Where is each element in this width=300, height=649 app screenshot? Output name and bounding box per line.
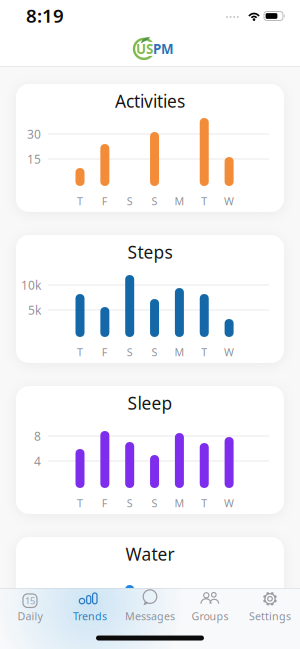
staticText: Settings: [249, 609, 291, 623]
button[interactable]: Groups: [182, 588, 238, 628]
staticText: Water: [125, 542, 174, 565]
staticText: Messages: [125, 609, 175, 623]
staticText: M: [174, 345, 184, 359]
staticText: T: [77, 194, 83, 208]
staticText: Steps: [127, 240, 172, 263]
staticText: F: [102, 345, 108, 359]
button[interactable]: 15: [2, 588, 58, 628]
staticText: W: [224, 345, 234, 359]
staticText: 15: [25, 594, 35, 607]
staticText: S: [127, 345, 133, 359]
staticText: S: [152, 345, 158, 359]
staticText: 15: [27, 151, 41, 167]
staticText: T: [201, 496, 207, 510]
staticText: PM: [153, 40, 174, 58]
staticText: S: [127, 194, 133, 208]
staticText: T: [201, 345, 207, 359]
staticText: W: [224, 194, 234, 208]
staticText: Trends: [73, 609, 107, 623]
staticText: Activities: [115, 89, 185, 112]
staticText: T: [201, 194, 207, 208]
staticText: 8:19: [26, 3, 64, 28]
staticText: F: [102, 496, 108, 510]
staticText: W: [224, 496, 234, 510]
staticText: Sleep: [127, 391, 172, 414]
staticText: F: [102, 194, 108, 208]
staticText: 8: [34, 428, 41, 444]
staticText: 30: [27, 126, 41, 142]
staticText: Daily: [17, 609, 42, 623]
button[interactable]: Settings: [242, 588, 298, 628]
staticText: Groups: [191, 609, 228, 623]
staticText: T: [77, 345, 83, 359]
staticText: US: [136, 40, 153, 58]
staticText: 4: [34, 453, 41, 469]
staticText: S: [152, 496, 158, 510]
staticText: S: [152, 194, 158, 208]
staticText: 10k: [21, 277, 41, 293]
staticText: T: [77, 496, 83, 510]
staticText: 5k: [28, 302, 41, 318]
button[interactable]: Messages: [122, 588, 178, 628]
staticText: S: [127, 496, 133, 510]
staticText: M: [174, 194, 184, 208]
staticText: M: [174, 496, 184, 510]
button[interactable]: Trends: [62, 588, 118, 628]
